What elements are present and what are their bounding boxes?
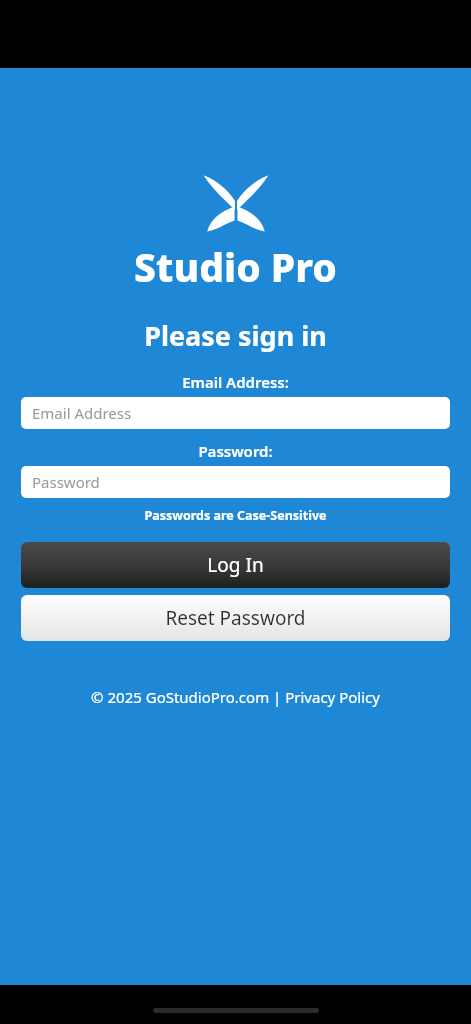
staticText: Email Address: [32, 403, 132, 423]
other: Studio Pro logo: [200, 174, 272, 232]
staticText: Studio Pro: [134, 240, 337, 293]
button[interactable]: Reset Password: [21, 595, 450, 641]
staticText: Reset Password: [165, 605, 306, 631]
button[interactable]: Email Address: [21, 397, 450, 429]
staticText: Email Address:: [182, 372, 289, 392]
staticText: Log In: [207, 552, 264, 578]
staticText: Password:: [198, 441, 273, 461]
staticText: Passwords are Case-Sensitive: [144, 507, 327, 524]
button[interactable]: Log In: [21, 542, 450, 588]
button[interactable]: © 2025 GoStudioPro.com | Privacy Policy: [91, 687, 380, 707]
staticText: Password: [32, 472, 100, 492]
staticText: Please sign in: [144, 317, 327, 354]
button[interactable]: Password: [21, 466, 450, 498]
